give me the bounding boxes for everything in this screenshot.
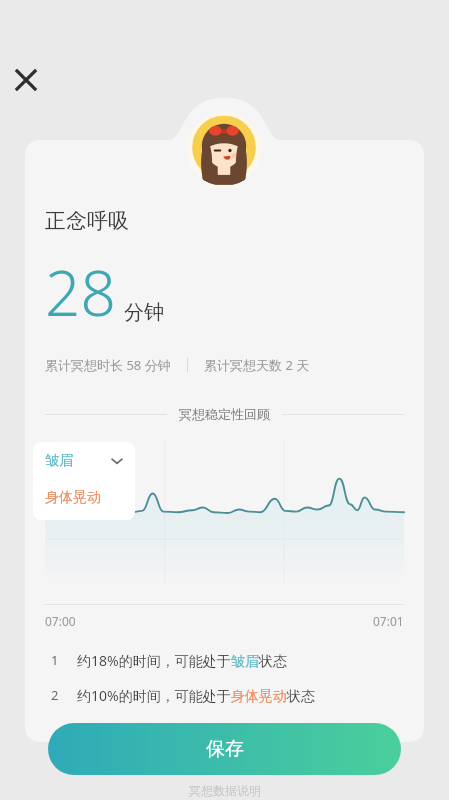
button[interactable]: 保存	[48, 723, 401, 775]
staticText: 正念呼吸	[45, 208, 129, 234]
staticText: 累计冥想天数 2 天	[204, 356, 310, 374]
button[interactable]: Close	[8, 62, 44, 98]
staticText: 冥想稳定性回顾	[179, 406, 270, 422]
staticText: 保存	[206, 737, 244, 761]
staticText: 分钟	[124, 300, 164, 325]
staticText: 2	[51, 686, 59, 704]
staticText: 累计冥想时长 58 分钟	[45, 356, 171, 374]
button[interactable]: Avatar	[187, 112, 261, 186]
staticText: 皱眉	[45, 452, 73, 470]
staticText: 07:01	[373, 613, 404, 629]
staticText: 约18%的时间，可能处于皱眉状态	[77, 651, 287, 670]
staticText: 冥想数据说明	[189, 783, 261, 798]
staticText: 1	[51, 651, 59, 669]
staticText: 约10%的时间，可能处于身体晃动状态	[77, 686, 315, 705]
button[interactable]: 身体晃动	[33, 480, 135, 516]
button[interactable]: 皱眉	[33, 442, 135, 480]
staticText: 28	[45, 250, 116, 334]
staticText: 07:00	[45, 613, 76, 629]
staticText: 身体晃动	[45, 489, 101, 507]
